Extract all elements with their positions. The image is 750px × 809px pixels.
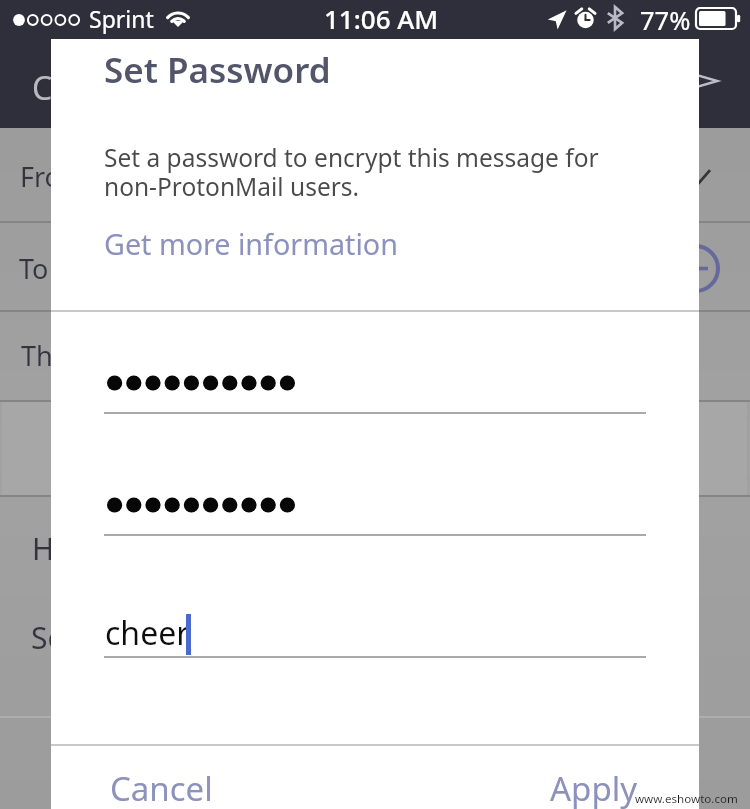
- staticText: Apply: [550, 766, 638, 809]
- button[interactable]: [104, 365, 646, 401]
- staticText: Hi,: [32, 528, 71, 569]
- button[interactable]: Compose: [0, 0, 750, 128]
- staticText: Set Password: [104, 46, 331, 94]
- button[interactable]: Get more information: [104, 224, 398, 266]
- staticText: Sent from ProtonMail Mobile: [31, 617, 437, 658]
- button[interactable]: Apply: [518, 753, 670, 809]
- button[interactable]: To: [0, 223, 750, 311]
- staticText: 77%: [640, 3, 691, 38]
- staticText: Thanks: [21, 337, 112, 374]
- button[interactable]: [2, 401, 747, 495]
- button[interactable]: Send: [676, 58, 722, 104]
- button[interactable]: [104, 487, 646, 523]
- staticText: Cancel: [110, 766, 213, 809]
- staticText: Compose: [32, 66, 174, 110]
- button[interactable]: Add recipient: [671, 244, 720, 293]
- staticText: Get more information: [104, 224, 398, 263]
- staticText: Set a password to encrypt this message f…: [104, 141, 684, 203]
- button[interactable]: Cancel: [83, 753, 240, 809]
- staticText: To: [19, 250, 49, 287]
- staticText: 11:06 AM: [324, 1, 439, 36]
- button[interactable]: From: [0, 128, 750, 222]
- button[interactable]: Thanks: [0, 312, 750, 400]
- staticText: cheer: [105, 611, 190, 655]
- button[interactable]: cheer: [104, 608, 646, 656]
- staticText: Sprint: [89, 3, 154, 34]
- staticText: From: [20, 158, 87, 195]
- staticText: www.eshowto.com: [635, 791, 738, 807]
